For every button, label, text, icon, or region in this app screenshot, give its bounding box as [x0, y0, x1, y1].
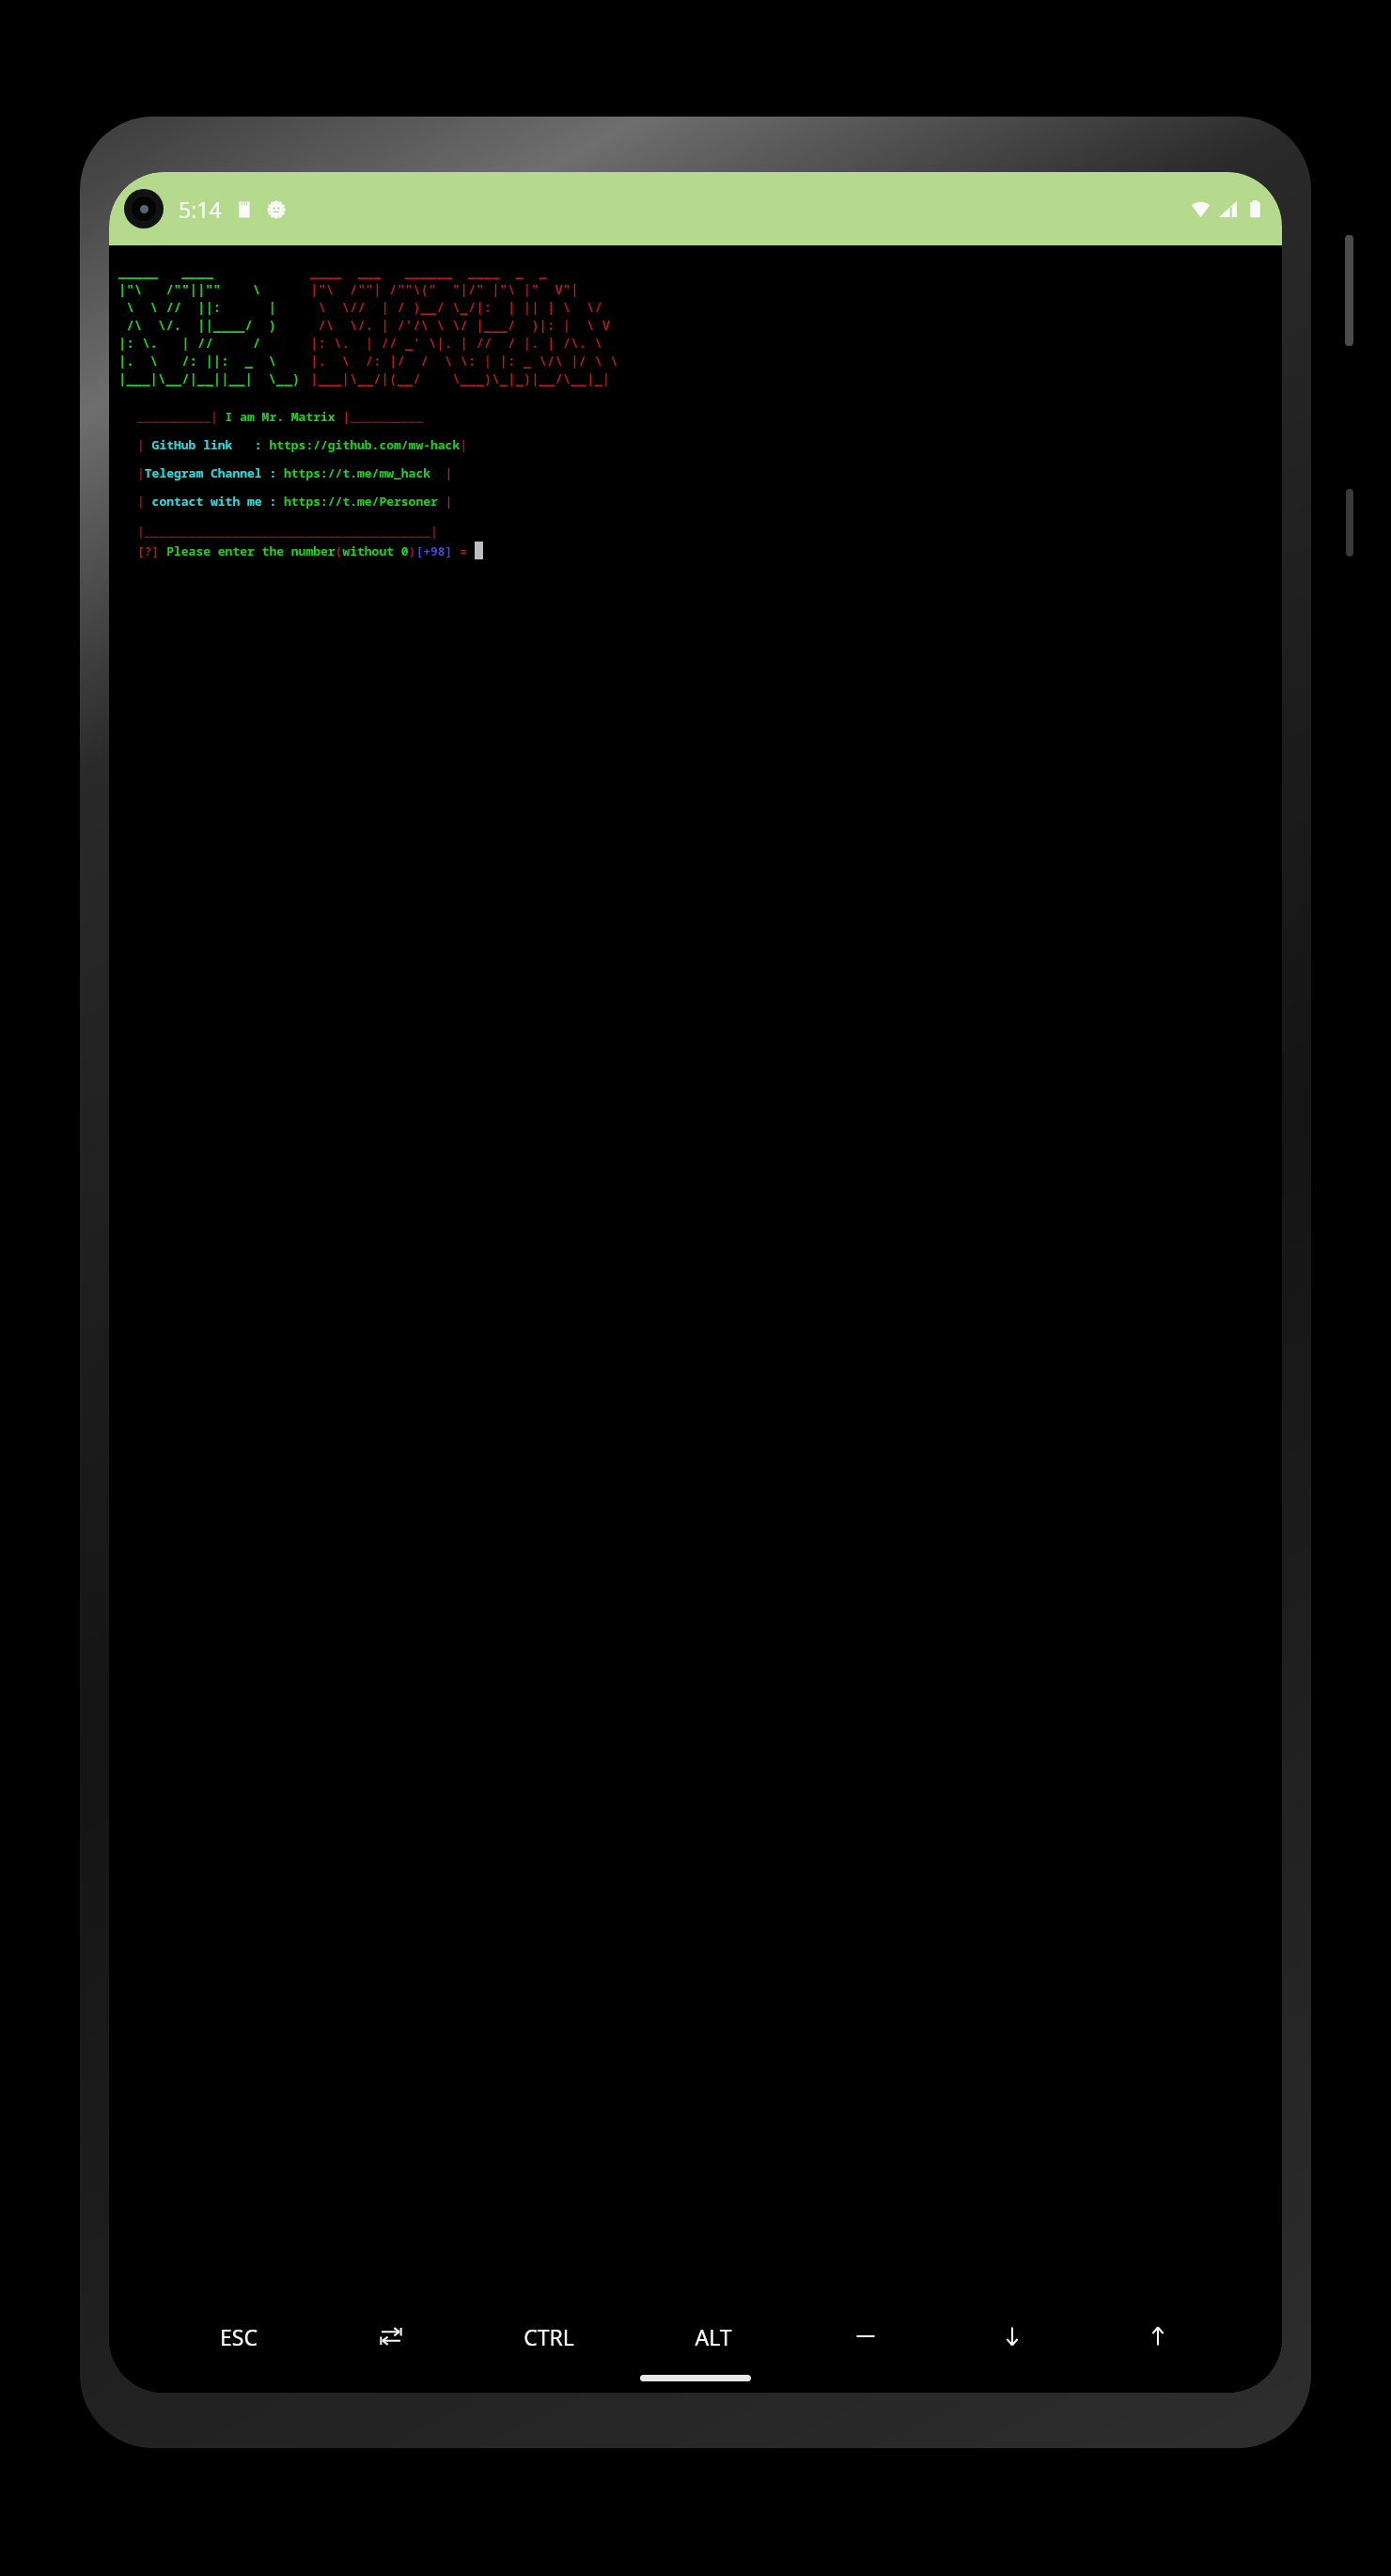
button[interactable]: | GitHub link : https://github.com/mw-ha… — [137, 436, 467, 453]
button[interactable]: Arrow up — [1135, 2316, 1180, 2357]
staticText: |: \. | // _' \|. | // / |. | /\. \ — [310, 334, 602, 352]
staticText: |___|\__/|(__/ \___)\_|_)|__/\__|_| — [310, 369, 611, 387]
staticText: |. \ /: ||: _ \ — [118, 352, 276, 369]
staticText: |: \. | // / — [118, 334, 261, 352]
staticText: /\ \/. | /'/\ \ \/ |___/ )|: | \ V — [310, 316, 611, 334]
staticText: |"\ /""||"" \ — [118, 280, 261, 298]
staticText: |___|\__/|__||__| \__) — [118, 369, 301, 387]
staticText: __________| I am Mr. Matrix |__________ — [137, 408, 424, 425]
staticText: 5:14 — [179, 195, 222, 224]
staticText: ALT — [695, 2322, 732, 2351]
button[interactable]: Tab — [368, 2316, 414, 2357]
staticText: \ \// | / )__/ \_/|: | || | \ \/ — [310, 298, 602, 316]
staticText: /\ \/. ||____/ ) — [118, 316, 276, 334]
staticText: |"\ /""| /""\(" "|/" |"\ |" V"| — [310, 280, 579, 298]
button[interactable]: CTRL — [514, 2315, 584, 2359]
staticText: ____ ___ ______ ____ _ _ — [310, 262, 547, 280]
staticText: CTRL — [524, 2322, 574, 2351]
staticText: |_______________________________________… — [137, 523, 438, 540]
staticText: [?] Please enter the number(without 0)[+… — [137, 542, 475, 559]
staticText: ESC — [220, 2322, 258, 2351]
button[interactable]: Minus — [843, 2316, 888, 2357]
button[interactable]: Arrow down — [990, 2316, 1035, 2357]
button[interactable]: ESC — [211, 2315, 267, 2359]
button[interactable]: ALT — [685, 2315, 742, 2359]
staticText: _____ ____ — [118, 262, 213, 280]
button[interactable]: |Telegram Channel : https://t.me/mw_hack… — [137, 464, 453, 481]
staticText: \ \ // ||: | — [118, 298, 276, 316]
staticText: |. \ /: |/ / \ \: | |: _ \/\ |/ \ \ — [310, 352, 618, 369]
button[interactable]: | contact with me : https://t.me/Persone… — [137, 493, 453, 510]
